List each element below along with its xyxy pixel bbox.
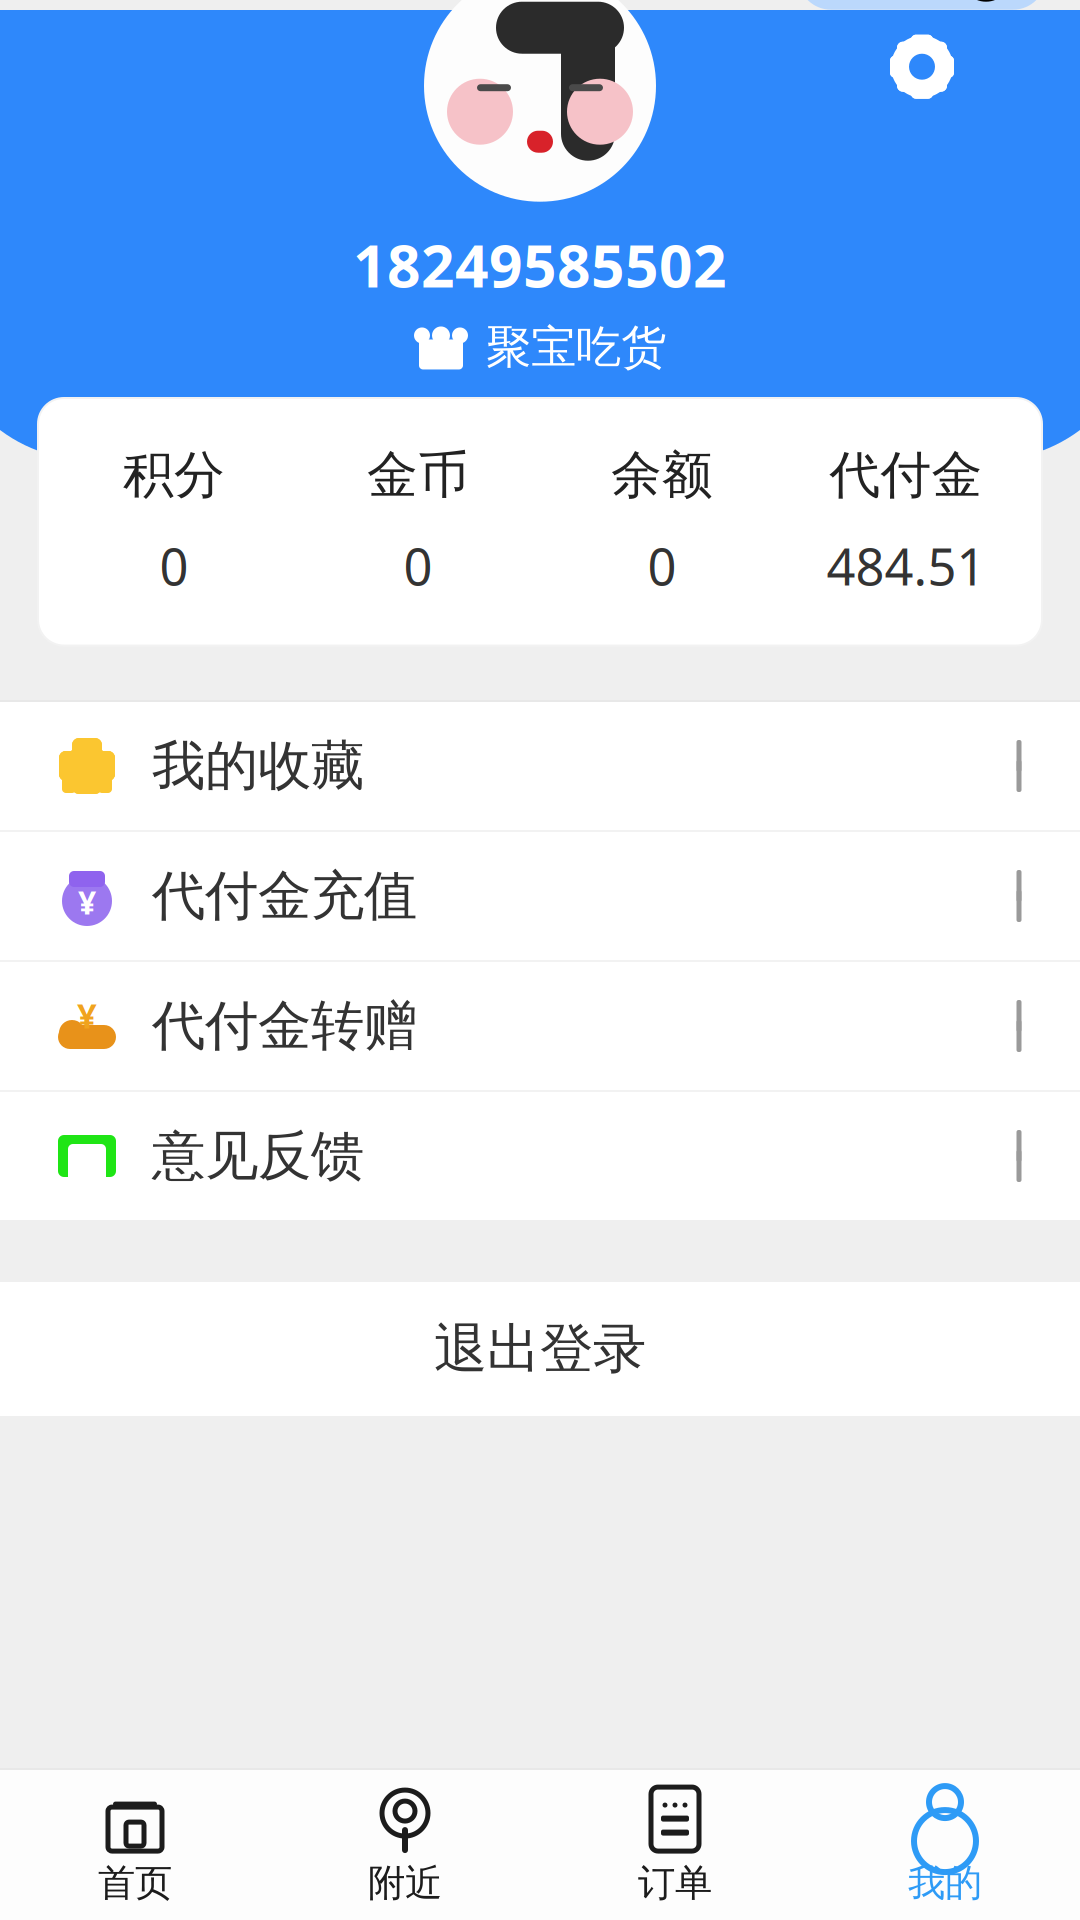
staticText: 0	[403, 532, 432, 599]
button[interactable]: 余额	[540, 420, 784, 623]
staticText: 代付金	[829, 444, 982, 506]
button[interactable]: 意见反馈	[0, 1092, 1080, 1220]
staticText: 0	[159, 532, 188, 599]
button[interactable]: Close	[926, 0, 1046, 10]
staticText: 附近	[368, 1860, 442, 1906]
staticText: 积分	[123, 444, 225, 506]
staticText: 金币	[367, 444, 469, 506]
staticText: 我的	[908, 1860, 982, 1906]
button[interactable]: 代付金	[784, 420, 1028, 623]
staticText: 余额	[611, 444, 713, 506]
staticText: 聚宝吃货	[486, 320, 666, 375]
button[interactable]: More	[798, 0, 924, 10]
staticText: 484.51	[826, 532, 985, 599]
button[interactable]: 积分	[52, 420, 296, 623]
button[interactable]: 附近	[270, 1770, 540, 1920]
button[interactable]: ¥	[0, 832, 1080, 960]
staticText: 首页	[98, 1860, 172, 1906]
staticText: 代付金充值	[152, 863, 417, 929]
button[interactable]: 订单	[540, 1770, 810, 1920]
staticText: 0	[647, 532, 676, 599]
staticText: 意见反馈	[152, 1123, 364, 1189]
staticText: 18249585502	[353, 226, 727, 304]
staticText: ¥	[77, 992, 97, 1038]
staticText: 我的收藏	[152, 733, 364, 799]
button[interactable]: ¥	[0, 962, 1080, 1090]
button[interactable]: Settings	[887, 32, 957, 102]
staticText: 代付金转赠	[152, 993, 417, 1059]
staticText: 退出登录	[434, 1316, 646, 1382]
button[interactable]: 我的	[810, 1770, 1080, 1920]
button[interactable]: 我的收藏	[0, 702, 1080, 830]
button[interactable]: 退出登录	[0, 1282, 1080, 1416]
staticText: ¥	[78, 881, 96, 923]
staticText: 订单	[638, 1860, 712, 1906]
button[interactable]: 金币	[296, 420, 540, 623]
button[interactable]: 首页	[0, 1770, 270, 1920]
